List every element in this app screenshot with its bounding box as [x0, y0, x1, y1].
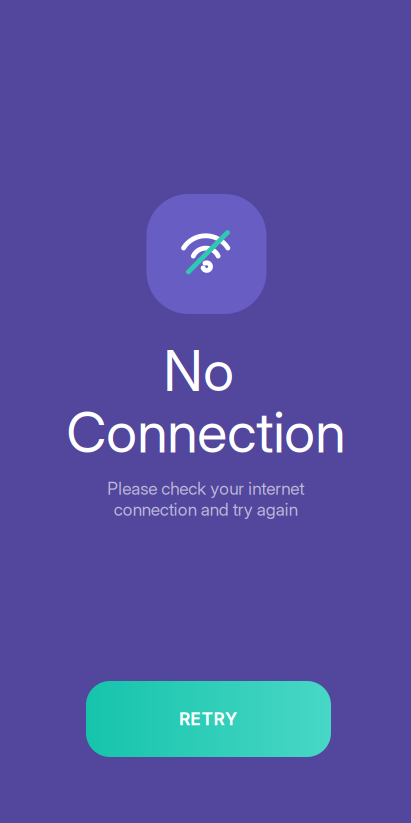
staticText: RETRY [179, 708, 242, 729]
staticText: No Connection [66, 337, 345, 466]
button[interactable]: RETRY [86, 681, 331, 757]
staticText: Please check your internet connection an… [107, 478, 304, 520]
